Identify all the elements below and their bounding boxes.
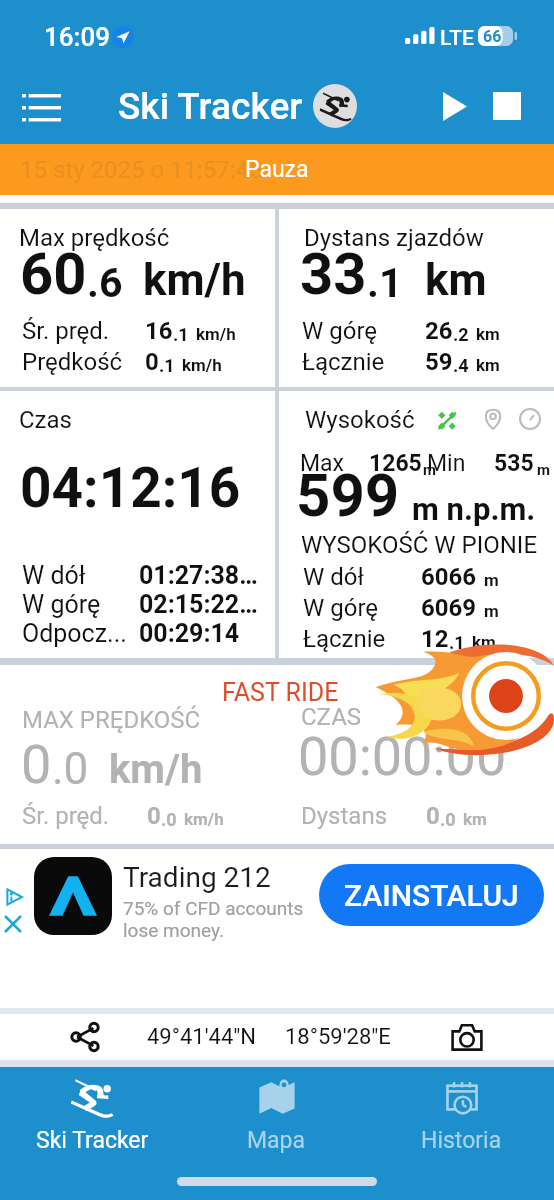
staticText: m n.p.m. [412, 491, 536, 527]
staticText: 1265 [369, 450, 422, 477]
staticText: .1 [173, 324, 189, 345]
staticText: Ski Tracker [118, 85, 303, 128]
staticText: W górę [303, 594, 421, 622]
staticText: 16:09 [44, 22, 111, 52]
staticText: .6 [87, 259, 123, 307]
staticText: 00:00:00 [298, 725, 507, 788]
staticText: 04:12:16 [20, 456, 241, 520]
button[interactable]: Mapa [184, 1067, 369, 1162]
staticText: Mapa [247, 1127, 306, 1154]
staticText: .1 [367, 259, 403, 307]
staticText: m [484, 601, 499, 621]
staticText: 6066 [421, 563, 477, 591]
button[interactable]: Stop [483, 82, 531, 130]
staticText: 60 [20, 240, 87, 308]
staticText: Odpocz... [22, 619, 139, 648]
button[interactable]: Dystans zjazdów [279, 209, 554, 387]
staticText: WYSOKOŚĆ W PIONIE [301, 531, 538, 559]
staticText: km/h [184, 809, 224, 829]
staticText: CZAS [301, 703, 362, 731]
staticText: Czas [19, 406, 72, 434]
staticText: 01:27:38… [139, 561, 258, 590]
button[interactable]: Menu [12, 76, 70, 136]
staticText: km/h [109, 746, 203, 793]
staticText: W dół [22, 561, 139, 590]
staticText: Śr. pręd. [22, 802, 147, 830]
staticText: .2 [453, 324, 469, 345]
staticText: .0 [52, 743, 89, 795]
staticText: Min [427, 450, 466, 477]
button[interactable]: ZAINSTALUJ [319, 864, 544, 926]
button[interactable]: Wysokość [279, 391, 554, 658]
button[interactable]: Historia [369, 1067, 554, 1162]
staticText: 12 [421, 625, 449, 653]
staticText: Pauza [245, 156, 309, 183]
staticText: .4 [453, 355, 469, 376]
staticText: 535 [494, 450, 534, 477]
staticText: Max [300, 450, 345, 477]
staticText: m [537, 461, 550, 479]
button[interactable]: Max prędkość [0, 209, 275, 387]
staticText: FAST RIDE [222, 678, 339, 707]
staticText: 0 [21, 733, 52, 796]
staticText: km [472, 632, 496, 652]
staticText: 26 [425, 317, 453, 345]
staticText: 599 [296, 460, 400, 530]
staticText: m [484, 570, 499, 590]
staticText: LTE [440, 26, 474, 51]
staticText: .0 [440, 809, 456, 830]
staticText: W górę [302, 317, 425, 345]
staticText: W górę [22, 590, 139, 619]
staticText: 16 [145, 317, 173, 345]
staticText: Trading 212 [123, 861, 271, 894]
button[interactable]: Record [462, 652, 550, 740]
staticText: km [476, 324, 500, 344]
button[interactable]: Share [64, 1016, 106, 1058]
button[interactable]: Czas [0, 391, 275, 658]
staticText: Łącznie [302, 348, 425, 376]
button[interactable]: Play [431, 82, 479, 130]
staticText: ZAINSTALUJ [344, 878, 519, 913]
staticText: .1 [159, 355, 175, 376]
staticText: 0 [426, 802, 440, 830]
button[interactable]: Ski Tracker [0, 1067, 184, 1162]
staticText: km/h [196, 324, 236, 344]
staticText: 00:29:14 [139, 619, 240, 648]
staticText: km [463, 809, 487, 829]
staticText: 66 [483, 27, 502, 46]
staticText: Max prędkość [19, 224, 170, 252]
staticText: Prędkość [22, 348, 145, 376]
staticText: 49°41'44"N [147, 1024, 256, 1050]
staticText: 15 sty 2025 o 11:57:45 [20, 156, 263, 184]
staticText: lose money. [123, 919, 225, 941]
staticText: MAX PRĘDKOŚĆ [22, 706, 201, 734]
staticText: 33 [300, 240, 367, 308]
staticText: m [423, 461, 436, 479]
staticText: 02:15:22… [139, 590, 258, 619]
staticText: Historia [421, 1127, 502, 1154]
staticText: Ski Tracker [36, 1127, 149, 1154]
staticText: 0 [145, 348, 159, 376]
staticText: 18°59'28"E [285, 1024, 391, 1050]
staticText: 6069 [421, 594, 477, 622]
staticText: 75% of CFD accounts [123, 897, 304, 919]
staticText: W dół [303, 563, 421, 591]
staticText: Śr. pręd. [22, 317, 145, 345]
staticText: km [425, 254, 487, 306]
staticText: Wysokość [305, 406, 415, 434]
staticText: Dystans [301, 802, 426, 830]
staticText: km [476, 355, 500, 375]
staticText: km/h [182, 355, 222, 375]
staticText: .1 [449, 632, 465, 653]
button[interactable]: Camera [446, 1016, 488, 1058]
staticText: 59 [425, 348, 453, 376]
staticText: .0 [161, 809, 177, 830]
staticText: Łącznie [303, 625, 421, 653]
staticText: Dystans zjazdów [304, 224, 484, 252]
staticText: km/h [143, 254, 246, 306]
staticText: 0 [147, 802, 161, 830]
